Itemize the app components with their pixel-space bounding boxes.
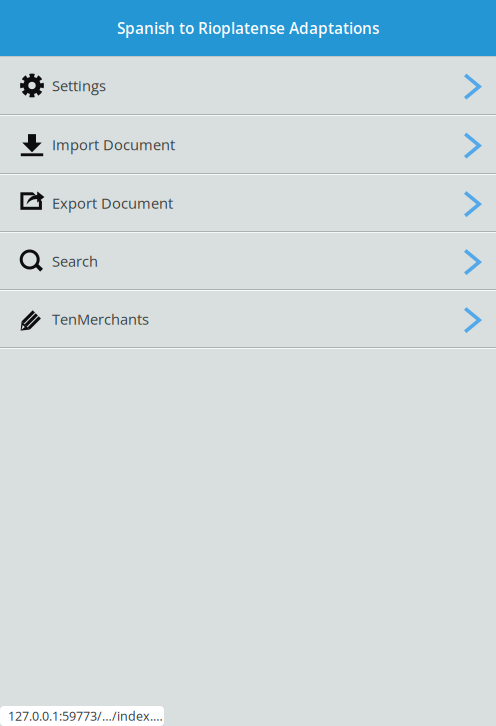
button[interactable]: Import Document: [0, 116, 496, 175]
staticText: Export Document: [52, 193, 173, 213]
staticText: 127.0.0.1:59773/…/index.…: [8, 707, 163, 725]
button[interactable]: Settings: [0, 57, 496, 116]
button[interactable]: Search: [0, 233, 496, 291]
button[interactable]: Export Document: [0, 175, 496, 233]
staticText: Search: [52, 251, 98, 271]
staticText: TenMerchants: [52, 309, 149, 329]
button[interactable]: TenMerchants: [0, 291, 496, 349]
staticText: Settings: [52, 75, 106, 95]
staticText: Spanish to Rioplatense Adaptations: [117, 18, 379, 38]
staticText: Import Document: [52, 134, 175, 154]
